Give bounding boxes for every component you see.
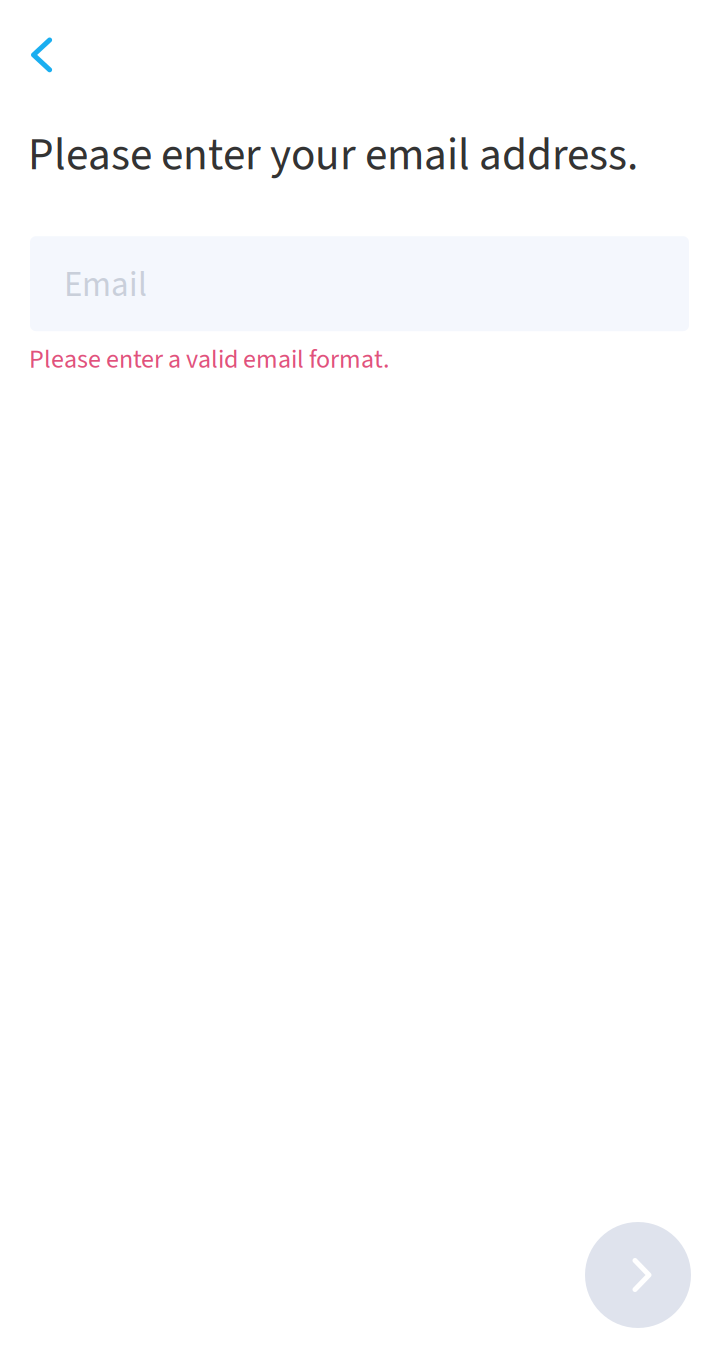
button[interactable]: Back	[2, 15, 82, 95]
button[interactable]: Email	[30, 236, 689, 331]
staticText: Please enter a valid email format.	[29, 341, 390, 378]
button[interactable]: Continue	[585, 1222, 691, 1328]
staticText: Email	[64, 260, 147, 310]
staticText: Please enter your email address.	[28, 123, 638, 187]
